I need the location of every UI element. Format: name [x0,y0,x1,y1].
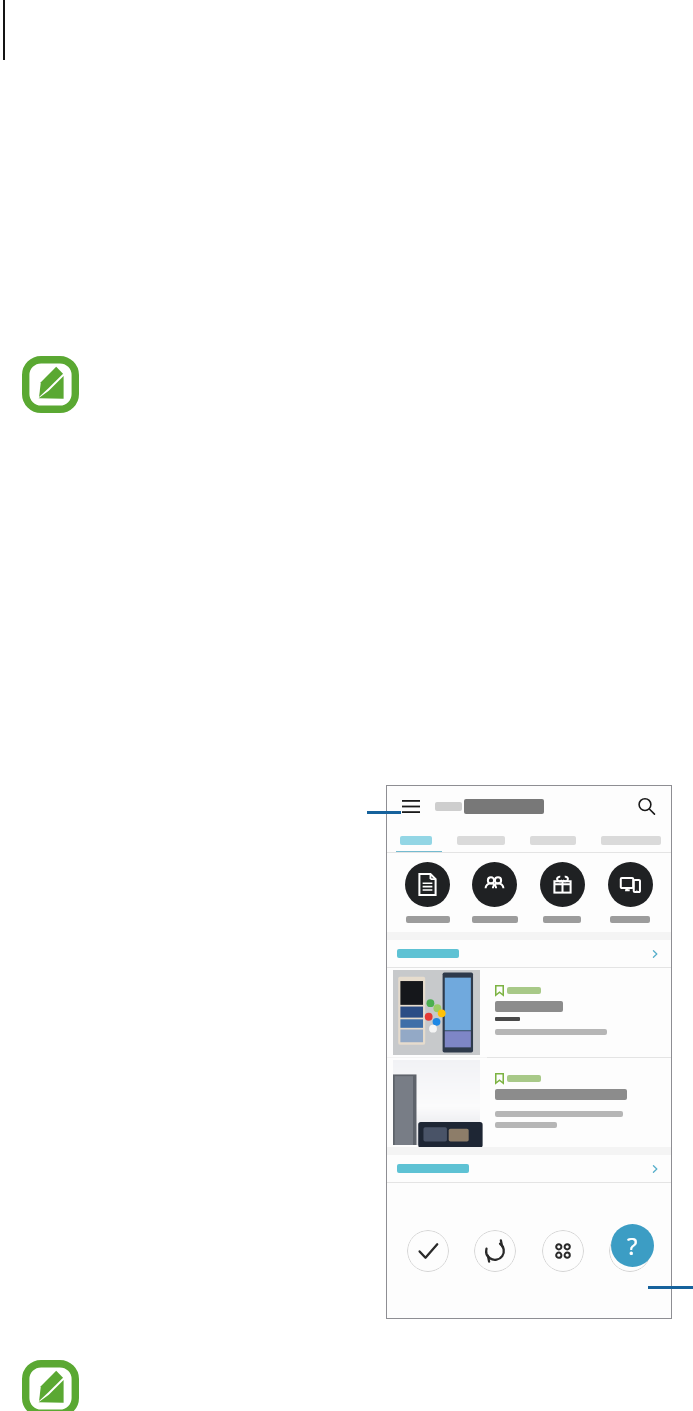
button[interactable]: Search [633,793,659,819]
button[interactable]: News and tips [386,940,672,967]
staticText: ? [627,1229,638,1262]
button[interactable]: Help options [609,1230,651,1272]
button[interactable] [457,827,505,853]
button[interactable]: Optimise [474,1230,516,1272]
button[interactable]: My benefits [528,862,596,923]
button[interactable]: My products [596,862,664,923]
button[interactable]: Open navigation menu [399,794,423,818]
button[interactable]: Diagnostics check [407,1230,449,1272]
button[interactable]: Help [611,1224,654,1267]
button[interactable] [601,827,661,853]
button[interactable] [400,827,432,853]
button[interactable]: Diagnostics [386,1155,672,1182]
button[interactable] [530,827,576,853]
button[interactable]: Feedback list [394,862,461,923]
button[interactable]: My community [461,862,528,923]
button[interactable]: All apps [542,1230,584,1272]
button[interactable] [386,1058,672,1147]
button[interactable] [386,968,672,1057]
